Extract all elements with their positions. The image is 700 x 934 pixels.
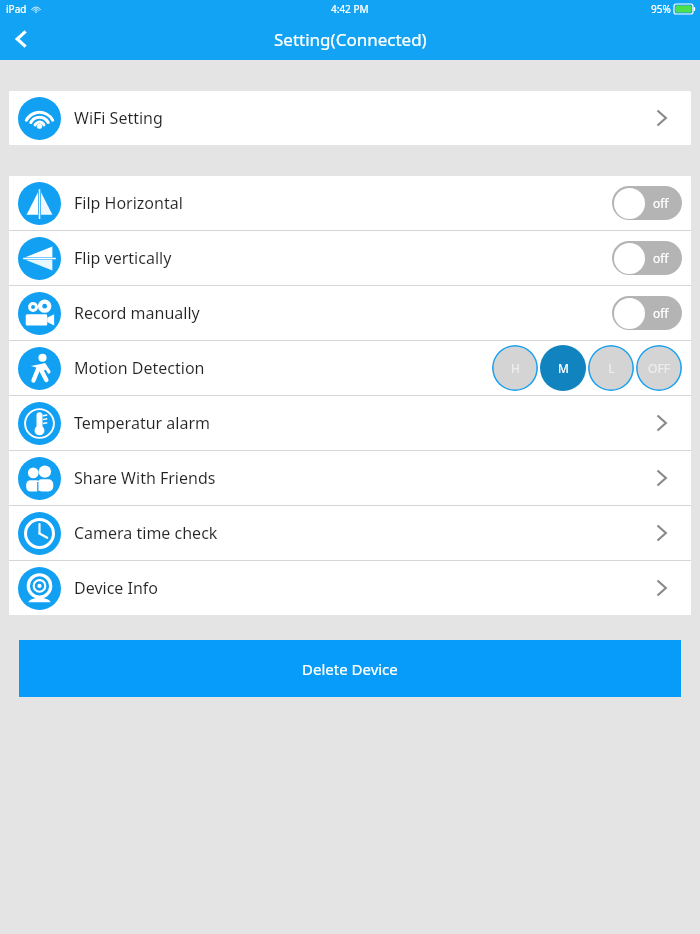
button[interactable]: M — [540, 345, 586, 391]
staticText: H — [511, 360, 520, 376]
button[interactable]: Open — [640, 402, 682, 444]
button[interactable]: Temperatur alarm — [9, 396, 691, 450]
staticText: Setting(Connected) — [274, 28, 427, 51]
button[interactable]: WiFi Setting — [9, 91, 691, 145]
button[interactable]: Toggle off — [612, 296, 682, 330]
staticText: OFF — [648, 360, 670, 376]
staticText: 4:42 PM — [331, 2, 369, 16]
staticText: Motion Detection — [74, 357, 205, 379]
staticText: M — [558, 360, 569, 376]
button[interactable]: Filp Horizontal — [9, 176, 691, 230]
button[interactable]: L — [588, 345, 634, 391]
button[interactable]: Open — [640, 567, 682, 609]
button[interactable]: H — [492, 345, 538, 391]
staticText: Share With Friends — [74, 467, 216, 489]
staticText: off — [653, 305, 669, 321]
staticText: 95% — [651, 2, 671, 16]
button[interactable]: Record manually — [9, 286, 691, 340]
button[interactable]: Toggle off — [612, 241, 682, 275]
button[interactable]: Flip vertically — [9, 231, 691, 285]
staticText: off — [653, 195, 669, 211]
button[interactable]: Motion Detection — [9, 341, 691, 395]
button[interactable]: Open — [640, 97, 682, 139]
staticText: Filp Horizontal — [74, 192, 183, 214]
button[interactable]: Device Info — [9, 561, 691, 615]
button[interactable]: Open — [640, 457, 682, 499]
button[interactable]: OFF — [636, 345, 682, 391]
staticText: iPad — [6, 2, 27, 16]
staticText: Temperatur alarm — [74, 412, 210, 434]
staticText: Device Info — [74, 577, 159, 599]
staticText: Delete Device — [302, 659, 398, 679]
button[interactable]: Delete Device — [19, 640, 681, 697]
staticText: L — [608, 360, 615, 376]
staticText: Camera time check — [74, 522, 218, 544]
staticText: Record manually — [74, 302, 200, 324]
button[interactable]: Camera time check — [9, 506, 691, 560]
button[interactable]: Toggle off — [612, 186, 682, 220]
button[interactable]: Back — [0, 18, 44, 60]
button[interactable]: Open — [640, 512, 682, 554]
staticText: WiFi Setting — [74, 107, 163, 129]
button[interactable]: Share With Friends — [9, 451, 691, 505]
staticText: Flip vertically — [74, 247, 172, 269]
staticText: off — [653, 250, 669, 266]
